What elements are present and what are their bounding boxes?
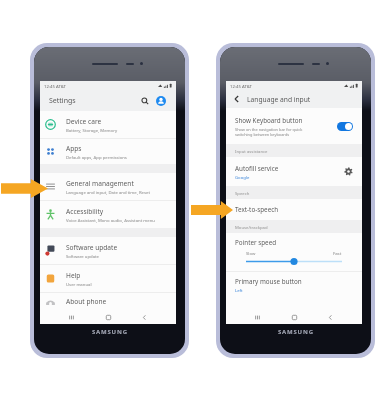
staticText: Accessibility — [66, 207, 104, 216]
button[interactable]: Home — [289, 312, 300, 323]
staticText: Input assistance — [235, 148, 268, 154]
staticText: Language and input — [247, 95, 311, 104]
button[interactable]: Software update — [40, 237, 176, 264]
button[interactable]: Back — [325, 312, 336, 323]
button[interactable]: Back — [232, 94, 242, 104]
button[interactable]: Recents — [252, 312, 263, 323]
staticText: Settings — [49, 96, 76, 106]
button[interactable]: Help — [40, 265, 176, 292]
button[interactable]: Toggle Show Keyboard button — [337, 122, 353, 131]
staticText: Apps — [66, 144, 82, 153]
staticText: Voice Assistant, Mono audio, Assistant m… — [66, 217, 155, 223]
staticText: Help — [66, 271, 81, 280]
staticText: Left — [235, 287, 243, 293]
button[interactable]: Autofill service — [226, 157, 362, 186]
button[interactable]: Account — [156, 96, 166, 106]
staticText: Device care — [66, 117, 102, 126]
staticText: Primary mouse button — [235, 277, 302, 286]
staticText: Pointer speed — [235, 238, 277, 247]
staticText: SAMSUNG — [278, 328, 314, 336]
button[interactable]: General management — [40, 173, 176, 200]
staticText: Autofill service — [235, 164, 279, 173]
staticText: Google — [235, 174, 250, 180]
staticText: Default apps, App permissions — [66, 154, 127, 160]
staticText: SAMSUNG — [92, 328, 128, 336]
staticText: Fast — [333, 250, 342, 256]
staticText: Software update — [66, 253, 99, 259]
staticText: Software update — [66, 243, 118, 252]
button[interactable]: Text-to-speech — [226, 199, 362, 220]
staticText: Show Keyboard button — [235, 116, 303, 125]
button[interactable]: Recents — [66, 312, 77, 323]
staticText: Battery, Storage, Memory — [66, 127, 118, 133]
staticText: General management — [66, 179, 134, 188]
button[interactable]: Pointer speed slider — [246, 257, 342, 266]
staticText: Language and input, Date and time, Reset — [66, 189, 150, 195]
button[interactable]: About phone — [40, 293, 176, 310]
button[interactable]: Autofill settings — [344, 167, 353, 176]
button[interactable]: Device care — [40, 111, 176, 138]
staticText: User manual — [66, 281, 92, 287]
staticText: Text-to-speech — [235, 205, 279, 214]
staticText: Slow — [246, 250, 256, 256]
staticText: Mouse/trackpad — [235, 224, 268, 230]
staticText: 12:45 AT&T — [230, 83, 252, 89]
button[interactable]: Home — [103, 312, 114, 323]
button[interactable]: Accessibility — [40, 201, 176, 228]
staticText: Speech — [235, 190, 250, 196]
button[interactable]: Apps — [40, 139, 176, 164]
button[interactable]: Search — [141, 97, 149, 105]
staticText: Show on the navigation bar for quick swi… — [235, 127, 303, 137]
button[interactable]: Back — [139, 312, 150, 323]
button[interactable]: Primary mouse button — [226, 272, 362, 311]
button[interactable]: Show Keyboard button — [226, 108, 362, 144]
staticText: 12:45 AT&T — [44, 83, 66, 89]
staticText: About phone — [66, 297, 107, 306]
